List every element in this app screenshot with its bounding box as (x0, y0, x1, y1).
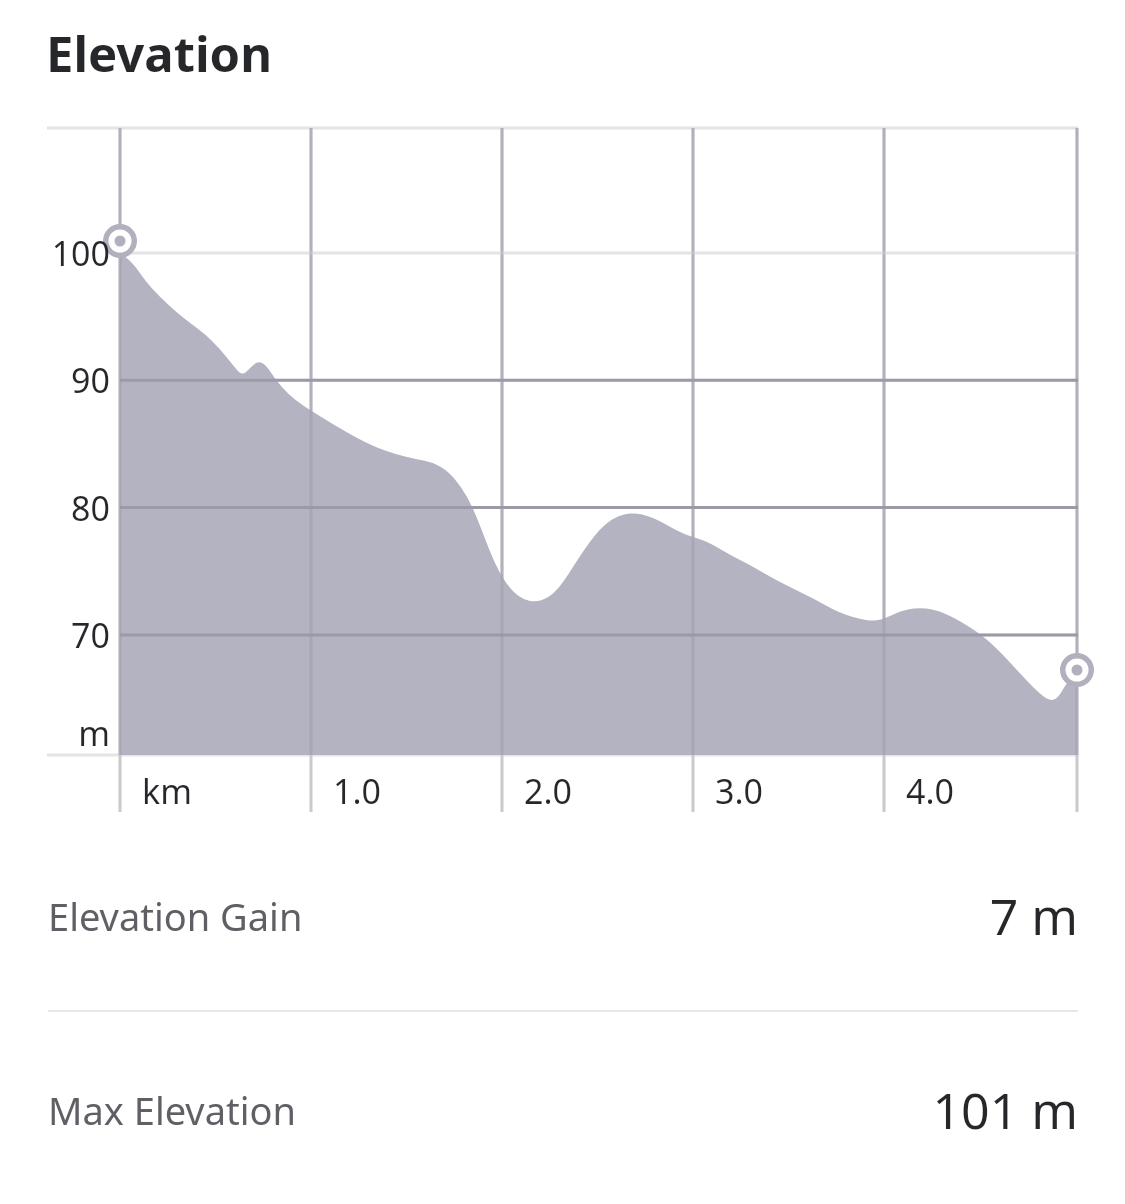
staticText: Max Elevation (48, 1084, 296, 1136)
staticText: m (78, 710, 110, 756)
staticText: 70 (71, 612, 110, 658)
button[interactable]: Max Elevation (0, 1062, 1125, 1158)
staticText: 3.0 (715, 768, 764, 814)
staticText: km (142, 768, 192, 814)
staticText: Elevation (46, 20, 273, 87)
button[interactable]: Elevation Gain (0, 868, 1125, 964)
staticText: 4.0 (906, 768, 955, 814)
staticText: 100 (51, 230, 110, 276)
staticText: 101 m (932, 1076, 1078, 1144)
staticText: 7 m (989, 882, 1078, 950)
staticText: 1.0 (333, 768, 382, 814)
staticText: Elevation Gain (48, 890, 303, 942)
staticText: 90 (71, 357, 110, 403)
staticText: 80 (71, 485, 110, 531)
staticText: 2.0 (524, 768, 573, 814)
